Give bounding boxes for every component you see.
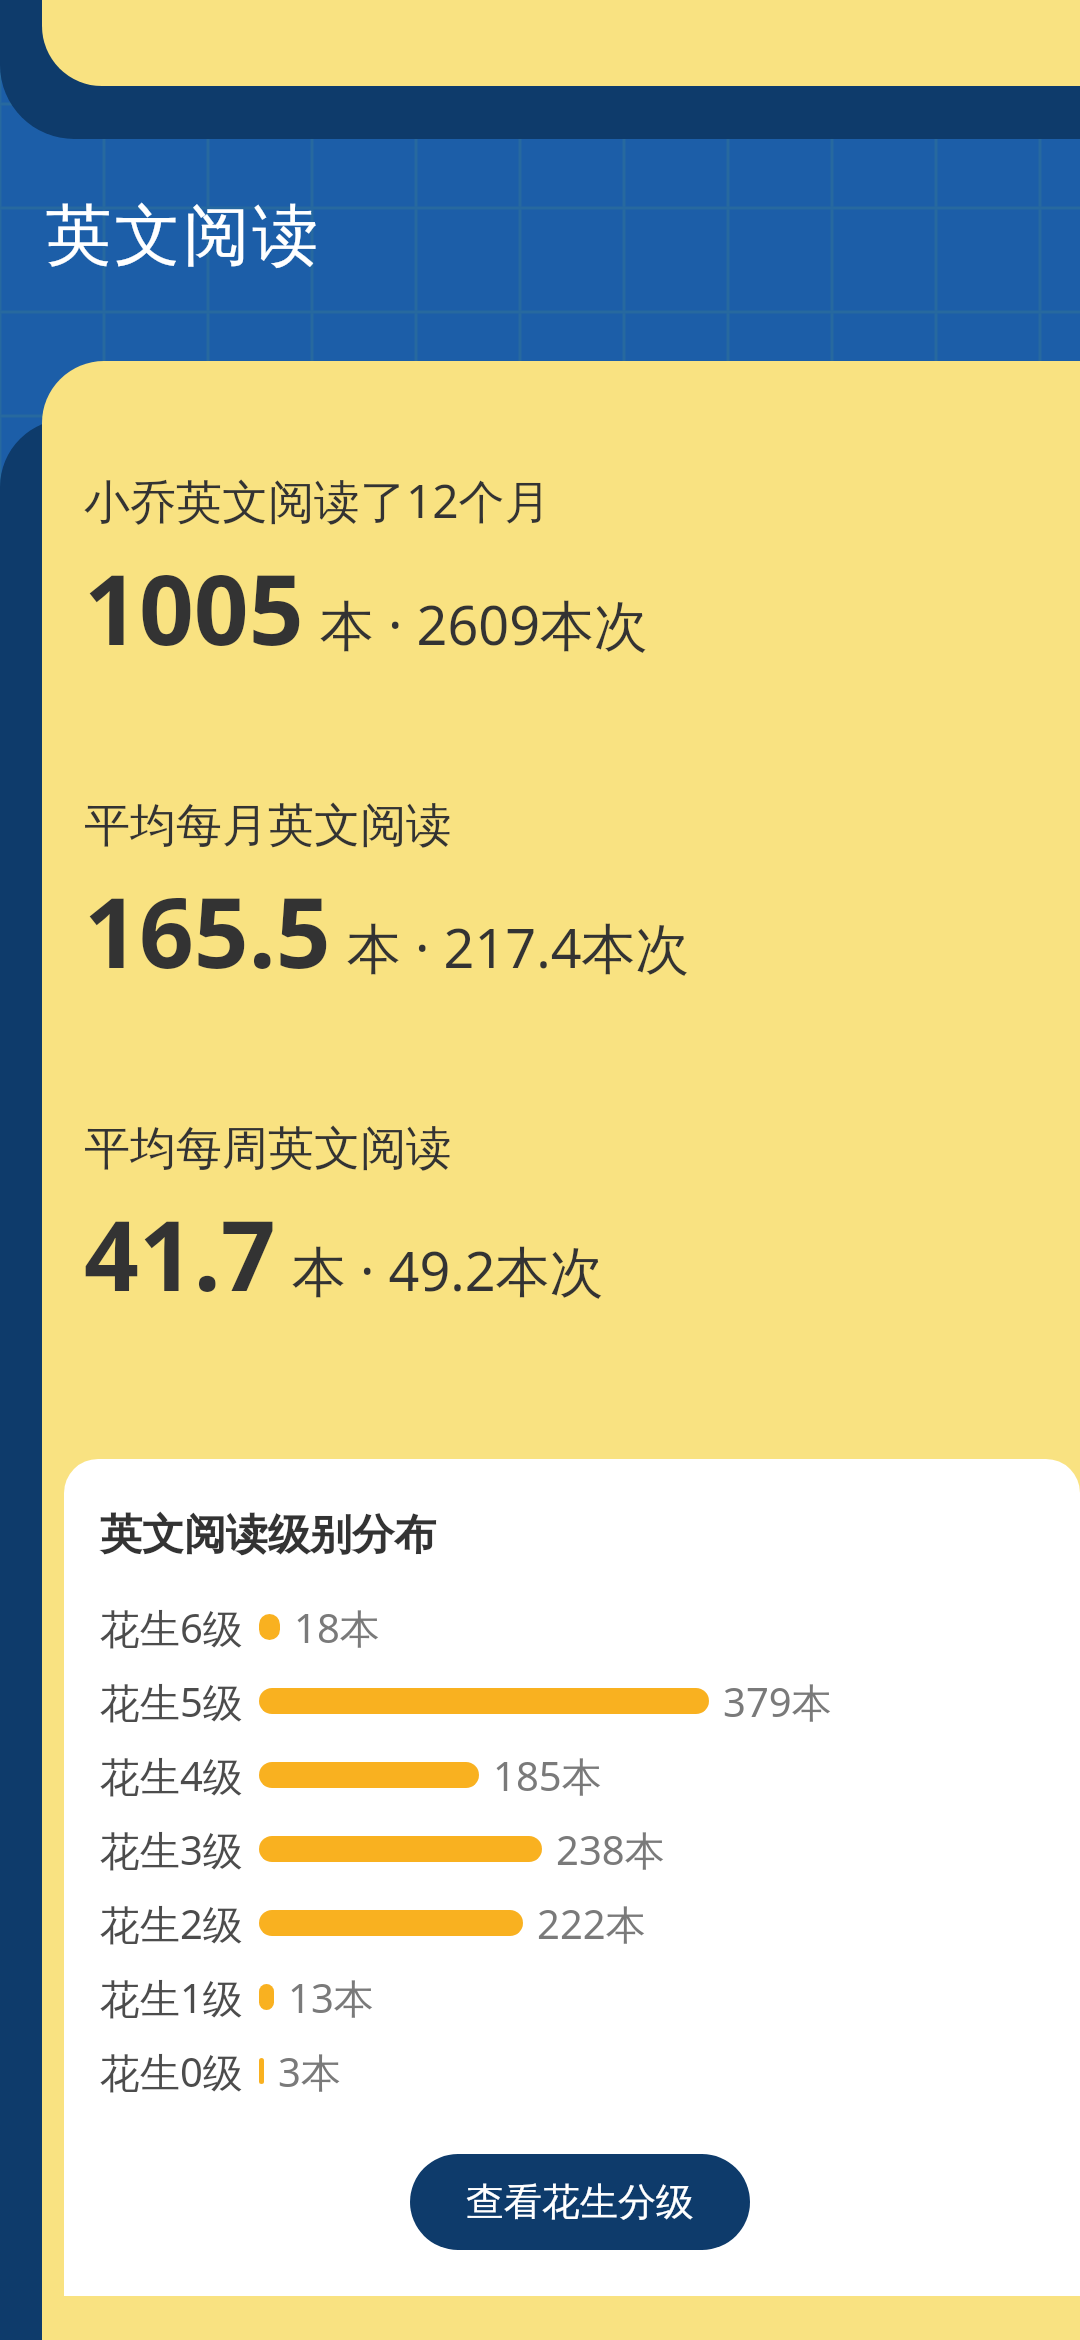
staticText: 222本 bbox=[537, 1896, 646, 1951]
staticText: 花生4级 bbox=[100, 1748, 243, 1803]
staticText: 185本 bbox=[493, 1748, 602, 1803]
staticText: 13本 bbox=[288, 1970, 374, 2025]
staticText: 238本 bbox=[556, 1822, 665, 1877]
staticText: 平均每周英文阅读 bbox=[84, 1120, 452, 1178]
staticText: 花生0级 bbox=[100, 2044, 243, 2099]
staticText: 英文阅读 bbox=[44, 194, 320, 277]
staticText: 花生3级 bbox=[100, 1822, 243, 1877]
staticText: 本 · 2609本次 bbox=[320, 587, 649, 661]
staticText: 英文阅读级别分布 bbox=[100, 1509, 436, 1562]
staticText: 165.5 bbox=[84, 865, 331, 996]
staticText: 41.7 bbox=[84, 1188, 276, 1319]
staticText: 平均每月英文阅读 bbox=[84, 797, 452, 855]
staticText: 1005 bbox=[84, 542, 304, 673]
staticText: 花生5级 bbox=[100, 1674, 243, 1729]
staticText: 3本 bbox=[278, 2044, 341, 2099]
staticText: 花生1级 bbox=[100, 1970, 243, 2025]
staticText: 379本 bbox=[723, 1674, 832, 1729]
staticText: 花生6级 bbox=[100, 1600, 243, 1655]
staticText: 本 · 217.4本次 bbox=[347, 910, 690, 984]
staticText: 小乔英文阅读了12个月 bbox=[84, 469, 551, 532]
staticText: 花生2级 bbox=[100, 1896, 243, 1951]
staticText: 查看花生分级 bbox=[466, 2178, 694, 2226]
button[interactable]: 查看花生分级 bbox=[410, 2154, 750, 2250]
staticText: 18本 bbox=[294, 1600, 380, 1655]
staticText: 本 · 49.2本次 bbox=[292, 1233, 604, 1307]
